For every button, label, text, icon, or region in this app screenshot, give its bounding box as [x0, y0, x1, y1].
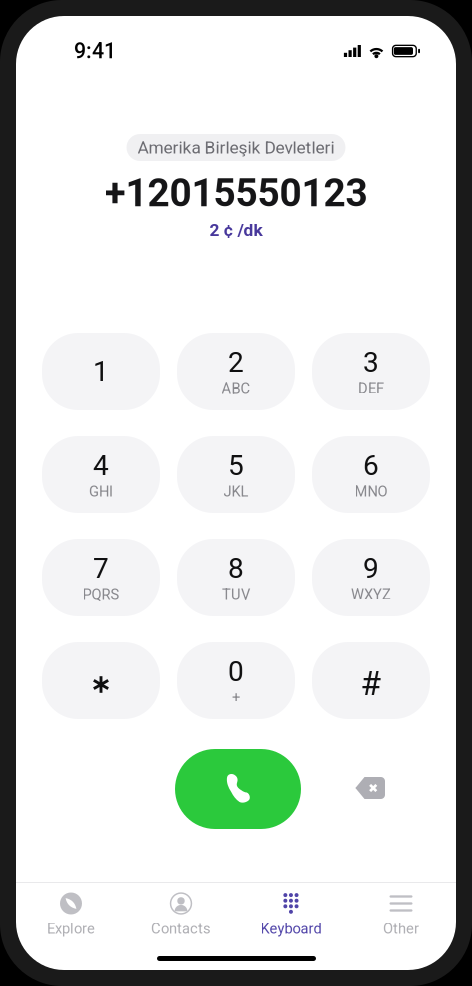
button[interactable]: Amerika Birleşik Devletleri [126, 134, 345, 161]
button[interactable]: 1 [42, 333, 160, 410]
button[interactable]: 5 [177, 436, 295, 513]
staticText: GHI [89, 483, 113, 500]
button[interactable]: # [312, 642, 430, 719]
staticText: 9:41 [74, 38, 116, 63]
staticText: JKL [223, 483, 248, 500]
staticText: MNO [354, 483, 387, 500]
staticText: 0 [228, 655, 244, 688]
staticText: ABC [221, 380, 250, 397]
staticText: 5 [228, 449, 244, 482]
button[interactable]: 0 [177, 642, 295, 719]
staticText: TUV [222, 586, 250, 603]
staticText: Keyboard [260, 920, 321, 937]
button[interactable]: Explore [16, 892, 126, 948]
button[interactable]: 9 [312, 539, 430, 616]
staticText: PQRS [82, 586, 119, 603]
button[interactable]: 8 [177, 539, 295, 616]
staticText: 7 [93, 552, 109, 585]
staticText: 9 [363, 552, 379, 585]
button[interactable] [42, 642, 160, 719]
staticText: 6 [363, 449, 379, 482]
staticText: + [232, 689, 240, 706]
staticText: 4 [93, 449, 109, 482]
staticText: 2 [228, 346, 244, 379]
button[interactable]: 7 [42, 539, 160, 616]
staticText: Amerika Birleşik Devletleri [137, 137, 334, 158]
button[interactable]: Delete [355, 777, 385, 799]
button[interactable]: Contacts [126, 892, 236, 948]
button[interactable]: 6 [312, 436, 430, 513]
staticText: +12015550123 [104, 170, 367, 216]
staticText: 2 ¢ /dk [209, 220, 262, 240]
button[interactable]: 4 [42, 436, 160, 513]
staticText: Other [383, 920, 419, 937]
staticText: 8 [228, 552, 244, 585]
staticText: 1 [93, 355, 109, 388]
staticText: Contacts [151, 920, 211, 937]
staticText: WXYZ [351, 586, 391, 603]
staticText: DEF [358, 380, 384, 397]
staticText: Explore [47, 920, 95, 937]
staticText: 3 [363, 346, 379, 379]
button[interactable]: 2 [177, 333, 295, 410]
button[interactable]: 3 [312, 333, 430, 410]
button[interactable]: Keyboard [236, 892, 346, 948]
button[interactable]: Other [346, 892, 456, 948]
button[interactable]: Call [175, 749, 301, 829]
staticText: # [360, 664, 381, 703]
